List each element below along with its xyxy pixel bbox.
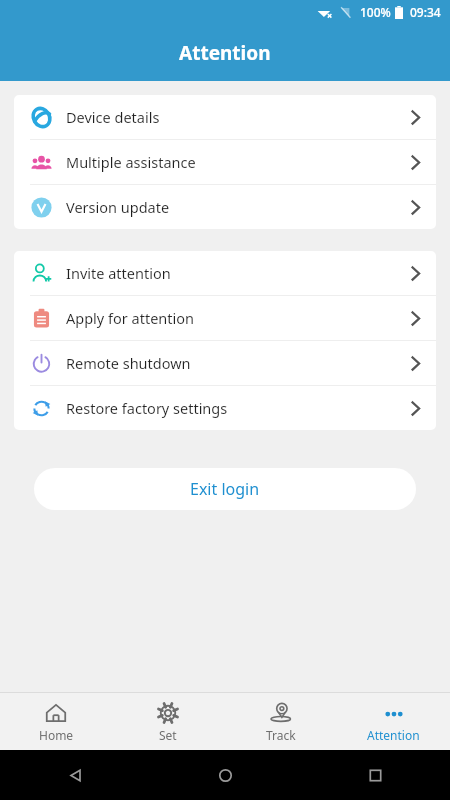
- button[interactable]: Attention: [337, 693, 450, 750]
- button[interactable]: Track: [224, 693, 337, 750]
- other: Recents: [369, 769, 382, 782]
- staticText: Device details: [66, 107, 411, 127]
- staticText: Remote shutdown: [66, 353, 411, 373]
- staticText: 100%: [360, 4, 391, 20]
- staticText: Restore factory settings: [66, 398, 411, 418]
- staticText: 09:34: [410, 4, 441, 20]
- other: Back: [68, 768, 83, 783]
- staticText: Attention: [179, 40, 271, 66]
- button[interactable]: Set: [112, 693, 224, 750]
- staticText: Multiple assistance: [66, 152, 411, 172]
- button[interactable]: Multiple assistance: [14, 140, 436, 184]
- staticText: Invite attention: [66, 263, 411, 283]
- staticText: Set: [159, 727, 177, 743]
- button[interactable]: Version update: [14, 185, 436, 229]
- button[interactable]: Remote shutdown: [14, 341, 436, 385]
- button[interactable]: Exit login: [34, 468, 416, 510]
- button[interactable]: Home: [0, 693, 112, 750]
- staticText: Attention: [367, 727, 420, 743]
- button[interactable]: Device details: [14, 95, 436, 139]
- staticText: Track: [266, 727, 296, 743]
- staticText: Exit login: [190, 478, 260, 500]
- button[interactable]: Apply for attention: [14, 296, 436, 340]
- button[interactable]: Restore factory settings: [14, 386, 436, 430]
- staticText: Home: [39, 727, 74, 743]
- other: Home: [218, 768, 233, 783]
- staticText: Version update: [66, 197, 411, 217]
- button[interactable]: Invite attention: [14, 251, 436, 295]
- staticText: Apply for attention: [66, 308, 411, 328]
